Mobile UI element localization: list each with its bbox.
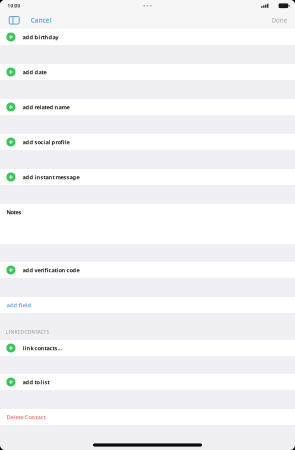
staticText: add related name: [23, 103, 70, 111]
button[interactable]: add verification code: [0, 262, 295, 278]
staticText: 10:00: [7, 3, 20, 9]
button[interactable]: add to list: [0, 374, 295, 390]
staticText: add instant message: [23, 173, 80, 181]
staticText: Done: [272, 16, 288, 24]
button[interactable]: add related name: [0, 99, 295, 115]
button[interactable]: Show Sidebar: [0, 16, 19, 24]
button[interactable]: add instant message: [0, 169, 295, 185]
button[interactable]: add birthday: [0, 29, 295, 45]
staticText: Cancel: [31, 16, 52, 24]
button[interactable]: Delete Contact: [0, 409, 295, 425]
button[interactable]: add field: [0, 297, 295, 313]
staticText: add field: [6, 301, 31, 309]
staticText: Delete Contact: [6, 413, 45, 421]
button[interactable]: Done: [272, 16, 295, 24]
button[interactable]: Cancel: [19, 16, 52, 24]
staticText: add verification code: [23, 266, 80, 274]
staticText: link contacts…: [23, 344, 63, 352]
button[interactable]: Notes: [0, 204, 295, 244]
staticText: add social profile: [23, 138, 70, 146]
button[interactable]: link contacts…: [0, 340, 295, 356]
button[interactable]: add date: [0, 64, 295, 80]
staticText: add to list: [23, 378, 50, 386]
staticText: add birthday: [23, 33, 59, 41]
button[interactable]: add social profile: [0, 134, 295, 150]
staticText: add date: [23, 68, 47, 76]
staticText: LINKED CONTACTS: [6, 329, 50, 335]
staticText: Notes: [6, 208, 21, 216]
